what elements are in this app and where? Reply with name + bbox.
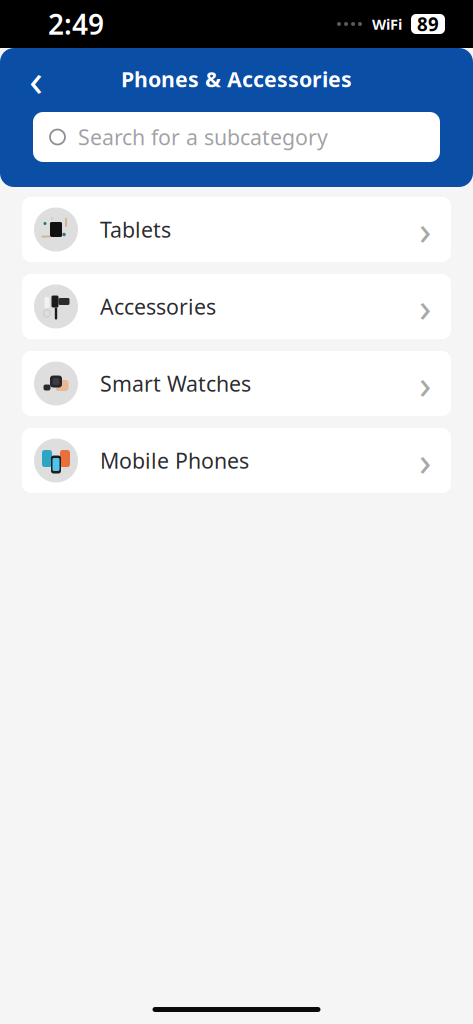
staticText: Accessories xyxy=(100,292,216,321)
staticText: 89 xyxy=(417,12,439,36)
button[interactable]: Smart Watches xyxy=(22,351,451,416)
button[interactable]: Back xyxy=(14,60,58,98)
staticText: Tablets xyxy=(100,215,171,244)
button[interactable]: Accessories xyxy=(22,274,451,339)
staticText: WiFi xyxy=(372,14,402,34)
staticText: Phones & Accessories xyxy=(121,65,352,93)
button[interactable]: Mobile Phones xyxy=(22,428,451,493)
button[interactable]: Search for a subcategory xyxy=(33,112,440,162)
staticText: ‹ xyxy=(29,49,43,109)
staticText: › xyxy=(419,357,431,410)
staticText: › xyxy=(419,434,431,487)
staticText: Mobile Phones xyxy=(100,446,249,475)
staticText: Smart Watches xyxy=(100,369,251,398)
staticText: › xyxy=(419,280,431,333)
staticText: Search for a subcategory xyxy=(78,123,328,151)
button[interactable]: Tablets xyxy=(22,197,451,262)
staticText: › xyxy=(419,203,431,256)
staticText: 2:49 xyxy=(48,5,104,43)
